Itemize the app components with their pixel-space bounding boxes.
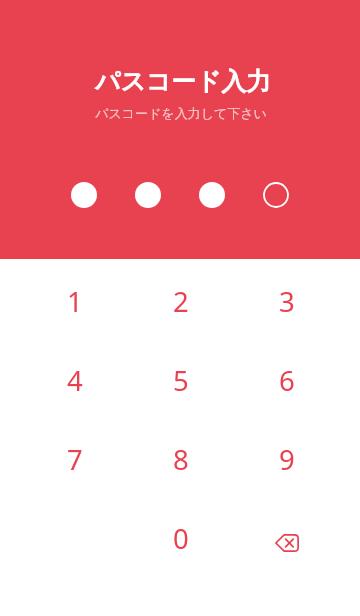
button[interactable]: 7	[22, 420, 128, 499]
staticText: 0	[173, 520, 189, 557]
staticText: 3	[279, 283, 295, 320]
staticText: パスコードを入力して下さい	[95, 105, 267, 121]
staticText: 5	[173, 362, 189, 399]
staticText: 1	[67, 283, 83, 320]
staticText: 9	[279, 441, 295, 478]
button[interactable]: 0	[128, 499, 234, 578]
staticText: 7	[67, 441, 83, 478]
staticText: 2	[173, 283, 189, 320]
button[interactable]: 3	[234, 262, 340, 341]
staticText: 8	[173, 441, 189, 478]
button[interactable]: 5	[128, 341, 234, 420]
button[interactable]: 1	[22, 262, 128, 341]
button[interactable]: 4	[22, 341, 128, 420]
button[interactable]: Backspace	[234, 499, 340, 578]
button[interactable]: 2	[128, 262, 234, 341]
button[interactable]: 6	[234, 341, 340, 420]
staticText: パスコード入力	[95, 66, 271, 97]
staticText: 6	[279, 362, 295, 399]
button[interactable]: 8	[128, 420, 234, 499]
staticText: 4	[67, 362, 83, 399]
button[interactable]: 9	[234, 420, 340, 499]
